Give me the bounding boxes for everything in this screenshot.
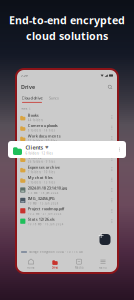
staticText: Stats 12/26.xls	[28, 216, 55, 222]
staticText: ↓	[29, 107, 31, 110]
staticText: Menu	[99, 266, 107, 269]
button[interactable]: Menu	[91, 257, 115, 271]
staticText: 2 folders · 13 files	[28, 181, 55, 184]
button[interactable]: Drive	[43, 257, 67, 271]
staticText: Syncs	[49, 95, 59, 100]
staticText: Clients	[25, 144, 43, 151]
staticText: Expenses archive	[28, 164, 60, 170]
button[interactable]: Expenses archive	[17, 164, 117, 174]
button[interactable]: Syncs	[48, 95, 60, 103]
staticText: Home	[27, 266, 35, 269]
staticText: 10.18 MB · 16 Jun 2024	[28, 222, 64, 226]
button[interactable]: IMG_32456.JPG	[17, 195, 117, 206]
staticText: End-to-end encrypted	[9, 13, 125, 27]
button[interactable]: Search	[107, 84, 113, 90]
staticText: Clients	[28, 154, 42, 159]
button[interactable]: Books	[17, 112, 117, 122]
button[interactable]: Add	[98, 233, 111, 246]
staticText: 8 folders · 14 files	[28, 129, 55, 132]
staticText: 12 folders · 30 files	[28, 139, 57, 143]
button[interactable]: Clients	[8, 141, 126, 158]
button[interactable]: Project roadmap.pdf	[17, 206, 117, 216]
staticText: 9:30	[21, 74, 28, 77]
button[interactable]: Work documents	[17, 133, 117, 143]
staticText: 7 folders · 10 files	[28, 170, 55, 174]
button[interactable]: Stats 12/26.xls	[17, 216, 117, 226]
staticText: 26 folders · 9 files	[28, 160, 55, 163]
button[interactable]: My chat files	[17, 174, 117, 185]
staticText: 10.2 MB · 21 Jun 2024	[28, 212, 62, 215]
staticText: cloud solutions	[26, 29, 108, 43]
staticText: Name	[21, 107, 28, 110]
staticText: Storage encryption 300A · 10 / 15 GB	[29, 250, 83, 254]
staticText: Drive	[51, 266, 58, 269]
staticText: 2024-01-18 23:14:10.jpg	[28, 185, 67, 191]
staticText: Camera uploads	[28, 123, 58, 128]
button[interactable]: Cloud drive	[21, 95, 43, 103]
staticText: Media	[75, 266, 83, 269]
button[interactable]: Contracts 2024	[17, 143, 117, 154]
button[interactable]: Media	[67, 257, 91, 271]
staticText: 4 folders · 21 files	[28, 150, 55, 153]
staticText: Cloud drive	[21, 95, 42, 100]
staticText: Books	[28, 112, 39, 118]
button[interactable]: 2024-01-18 23:14:10.jpg	[17, 185, 117, 195]
button[interactable]: Clients	[17, 154, 117, 164]
staticText: 10 MB · 15 Jun 2024	[28, 202, 59, 205]
staticText: ♥	[45, 145, 49, 150]
staticText: Work documents	[28, 133, 61, 139]
staticText: My chat files	[28, 175, 53, 180]
staticText: 6 folders · 12 files	[25, 152, 52, 155]
button[interactable]: Home	[19, 257, 43, 271]
staticText: 44 folders	[28, 118, 43, 122]
staticText: Contracts 2024	[28, 144, 57, 149]
staticText: IMG_32456.JPG	[28, 196, 55, 201]
staticText: Project roadmap.pdf	[28, 206, 64, 211]
staticText: 3.5 MB · 18 Jan 2024	[28, 191, 59, 195]
staticText: Drive	[21, 83, 35, 91]
button[interactable]: Camera uploads	[17, 122, 117, 133]
